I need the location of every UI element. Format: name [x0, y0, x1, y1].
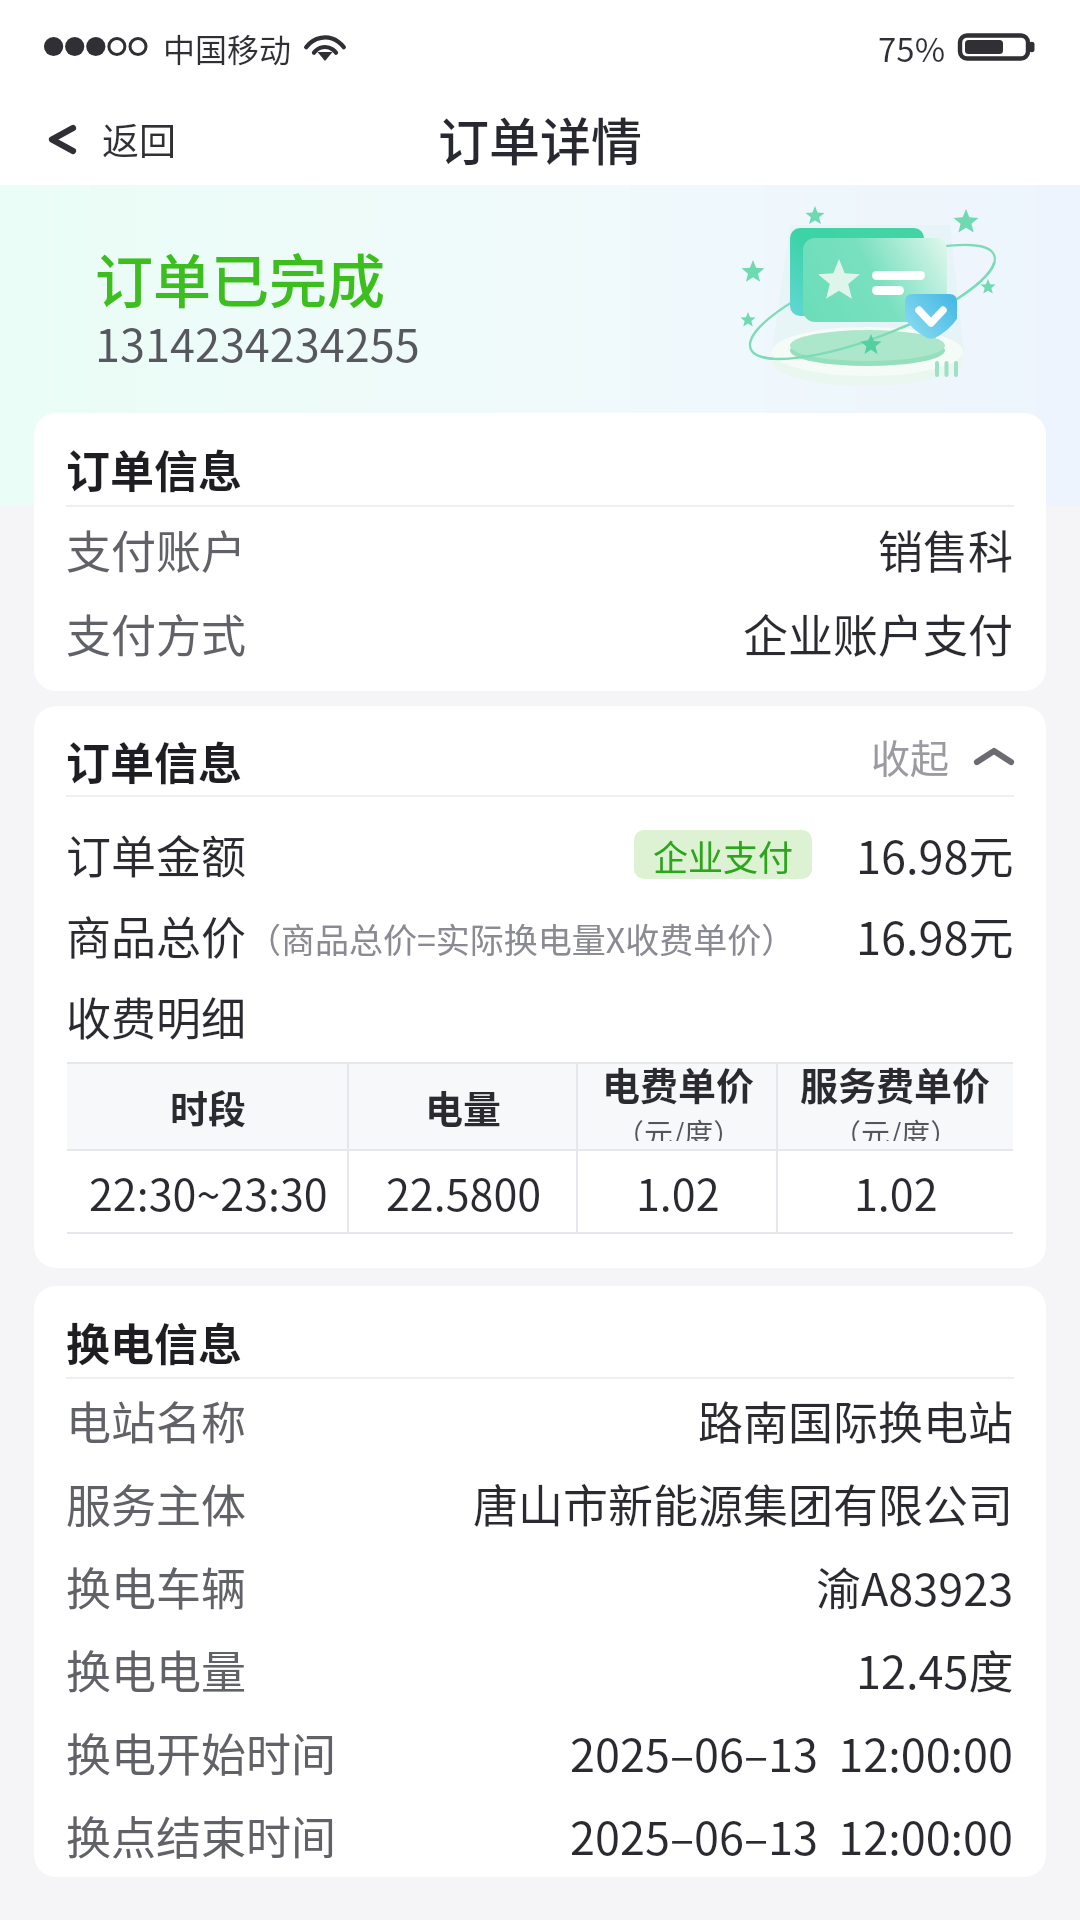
staticText: 换电车辆: [66, 1554, 247, 1619]
staticText: 返回: [102, 112, 176, 166]
staticText: 1.02: [854, 1161, 938, 1223]
staticText: 服务主体: [66, 1471, 247, 1536]
button[interactable]: 换点结束时间: [34, 1794, 1046, 1877]
staticText: 收费明细: [66, 984, 247, 1049]
staticText: 12.45度: [856, 1637, 1014, 1702]
staticText: （元/度）: [832, 1111, 960, 1141]
staticText: 2025–06–13 12:00:00: [570, 1803, 1014, 1868]
staticText: 订单信息: [66, 437, 242, 501]
staticText: 16.98元: [856, 903, 1014, 968]
button[interactable]: 支付方式: [34, 591, 1046, 675]
staticText: 订单已完成: [95, 236, 386, 320]
staticText: 75%: [878, 24, 946, 72]
staticText: 换点结束时间: [66, 1803, 337, 1868]
button[interactable]: 换电车辆: [34, 1545, 1046, 1628]
staticText: 订单信息: [66, 729, 242, 793]
staticText: 1314234234255: [95, 310, 420, 375]
staticText: 路南国际换电站: [698, 1388, 1014, 1453]
staticText: （商品总价=实际换电量X收费单价）: [247, 914, 796, 963]
staticText: 电量: [425, 1079, 502, 1134]
staticText: 企业支付: [653, 830, 794, 879]
staticText: 支付方式: [66, 601, 247, 666]
staticText: 22.5800: [386, 1161, 542, 1223]
button[interactable]: 收起: [839, 722, 1046, 790]
staticText: （元/度）: [615, 1111, 743, 1141]
staticText: 唐山市新能源集团有限公司: [473, 1471, 1014, 1536]
staticText: 2025–06–13 12:00:00: [570, 1720, 1014, 1785]
staticText: 16.98元: [856, 822, 1014, 887]
button[interactable]: 支付账户: [34, 507, 1046, 591]
staticText: 服务费单价: [800, 1056, 991, 1111]
staticText: 22:30~23:30: [89, 1161, 328, 1223]
button[interactable]: 电站名称: [34, 1379, 1046, 1462]
staticText: 渝A83923: [816, 1554, 1014, 1619]
staticText: 订单金额: [66, 822, 247, 887]
staticText: 电站名称: [66, 1388, 247, 1453]
staticText: 换电开始时间: [66, 1720, 337, 1785]
staticText: 中国移动: [163, 25, 292, 71]
staticText: 电费单价: [602, 1056, 755, 1111]
button[interactable]: 换电开始时间: [34, 1711, 1046, 1794]
staticText: 换电信息: [66, 1310, 242, 1374]
staticText: 销售科: [878, 517, 1014, 582]
staticText: 企业账户支付: [743, 601, 1014, 666]
staticText: 时段: [170, 1079, 247, 1134]
staticText: 收起: [871, 728, 950, 784]
button[interactable]: 换电电量: [34, 1628, 1046, 1711]
staticText: 1.02: [636, 1161, 720, 1223]
staticText: 商品总价: [66, 903, 247, 968]
staticText: 换电电量: [66, 1637, 247, 1702]
staticText: 支付账户: [66, 517, 247, 582]
button[interactable]: 返回: [0, 98, 200, 180]
button[interactable]: 服务主体: [34, 1462, 1046, 1545]
staticText: 订单详情: [438, 102, 643, 176]
